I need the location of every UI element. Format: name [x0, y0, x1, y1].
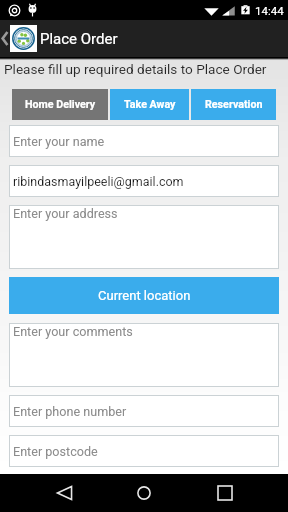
- staticText: Enter phone number: [13, 404, 127, 419]
- staticText: Enter your address: [13, 206, 118, 221]
- staticText: Current location: [98, 288, 191, 303]
- button[interactable]: Enter your comments: [9, 323, 279, 387]
- staticText: Place Order: [40, 30, 118, 48]
- button[interactable]: Back: [0, 20, 10, 57]
- button[interactable]: Enter phone number: [9, 395, 279, 427]
- button[interactable]: Recents: [206, 474, 244, 512]
- staticText: Take Away: [124, 98, 176, 111]
- button[interactable]: Home: [125, 474, 163, 512]
- staticText: Reservation: [205, 98, 263, 111]
- staticText: Enter your name: [13, 134, 105, 149]
- button[interactable]: ribindasmayilpeeli@gmail.com: [9, 165, 279, 197]
- button[interactable]: Enter postcode: [9, 435, 279, 467]
- staticText: 14:44: [255, 4, 284, 17]
- button[interactable]: Enter your address: [9, 205, 279, 269]
- staticText: Home Delivery: [25, 98, 96, 111]
- staticText: Enter your comments: [13, 324, 133, 339]
- staticText: ribindasmayilpeeli@gmail.com: [13, 174, 184, 189]
- button[interactable]: Current location: [9, 277, 279, 314]
- button[interactable]: Reservation: [191, 89, 276, 120]
- button[interactable]: Enter your name: [9, 125, 279, 157]
- staticText: Please fill up required details to Place…: [4, 61, 267, 77]
- staticText: Enter postcode: [13, 444, 98, 459]
- button[interactable]: Back: [45, 474, 83, 512]
- button[interactable]: Home Delivery: [12, 89, 108, 120]
- button[interactable]: Take Away: [110, 89, 189, 120]
